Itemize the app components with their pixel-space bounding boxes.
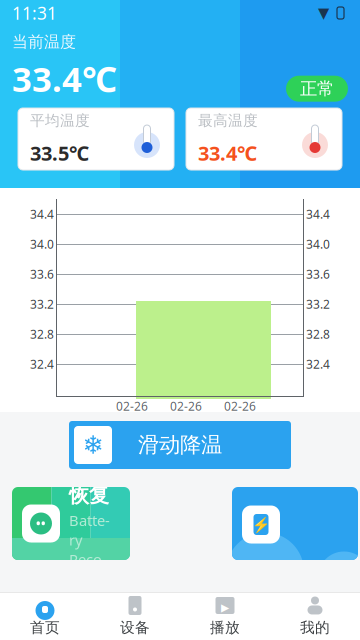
staticText: ❄ [82,431,103,459]
button[interactable]: Promotions [12,487,130,560]
staticText: 02-26 [170,398,202,414]
staticText: 11:31 [12,1,57,24]
button[interactable]: 我的 [270,592,360,640]
staticText: 平均温度 [30,112,90,130]
button[interactable]: ▶ [180,592,270,640]
staticText: 首页 [30,618,60,636]
staticText: 32.8 [30,326,54,342]
staticText: 33.4℃ [12,56,117,102]
staticText: 34.4 [30,206,54,222]
staticText: 02-26 [224,398,256,414]
button[interactable]: ❄ [69,421,291,469]
staticText: 02-26 [116,398,148,414]
staticText: 我的 [300,618,330,636]
staticText: 最高温度 [198,112,258,130]
button[interactable]: Promotions [232,487,358,560]
staticText: •• [36,515,46,531]
staticText: 32.4 [306,356,330,372]
staticText: 32.8 [306,326,330,342]
staticText: 32.4 [30,356,54,372]
button[interactable]: 正常 [286,76,348,102]
staticText: ▼ [318,5,329,21]
staticText: Battery Recovery [69,511,110,588]
staticText: 正常 [300,78,334,99]
button[interactable]: 设备 [90,592,180,640]
staticText: 33.5℃ [30,140,89,166]
staticText: 33.2 [306,296,330,312]
staticText: 滑动降温 [138,432,222,458]
staticText: 33.4℃ [198,140,257,166]
button[interactable]: 首页 [0,592,90,640]
staticText: 电池恢复 [69,458,109,508]
staticText: 34.0 [306,236,330,252]
staticText: 33.6 [30,266,54,282]
staticText: 34.4 [306,206,330,222]
staticText: 当前温度 [12,32,76,52]
staticText: ⚡ [252,516,270,533]
staticText: 33.2 [30,296,54,312]
staticText: 设备 [120,618,150,636]
staticText: ▶ [221,601,229,613]
staticText: 34.0 [30,236,54,252]
staticText: 播放 [210,618,240,636]
staticText: 33.6 [306,266,330,282]
